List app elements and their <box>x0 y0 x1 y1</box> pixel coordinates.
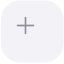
button[interactable]: Add <box>0 0 64 64</box>
